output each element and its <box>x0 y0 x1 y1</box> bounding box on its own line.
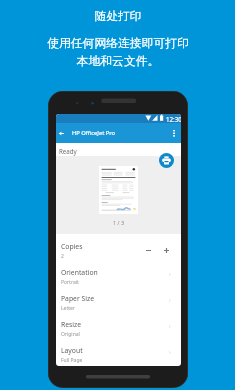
staticText: 使用任何网络连接即可打印 本地和云文件。 <box>47 36 189 69</box>
button[interactable]: Paper Size <box>56 286 181 312</box>
staticText: Paper Size <box>61 294 95 303</box>
button[interactable]: More options <box>169 129 178 138</box>
staticText: Resize <box>61 320 82 329</box>
button[interactable]: Back <box>57 129 66 138</box>
staticText: 12:30 <box>166 115 181 123</box>
staticText: Ready <box>59 147 77 155</box>
staticText: Full Page <box>61 357 83 364</box>
button[interactable]: Print <box>159 153 174 168</box>
button[interactable]: Increase copies <box>160 244 172 256</box>
staticText: Portrait <box>61 279 79 286</box>
staticText: 2 <box>61 253 64 260</box>
staticText: HP OfficeJet Pro <box>72 129 116 137</box>
staticText: 随处打印 <box>95 9 141 23</box>
button[interactable]: Layout <box>56 338 181 364</box>
button[interactable]: Decrease copies <box>142 244 154 256</box>
button[interactable]: Orientation <box>56 260 181 286</box>
staticText: Original <box>61 331 80 338</box>
staticText: 1 / 3 <box>113 219 125 226</box>
staticText: Layout <box>61 346 83 355</box>
staticText: Letter <box>61 305 75 312</box>
staticText: Copies <box>61 242 83 251</box>
button[interactable]: Copies <box>56 234 181 260</box>
button[interactable]: Resize <box>56 312 181 338</box>
staticText: Orientation <box>61 268 98 277</box>
